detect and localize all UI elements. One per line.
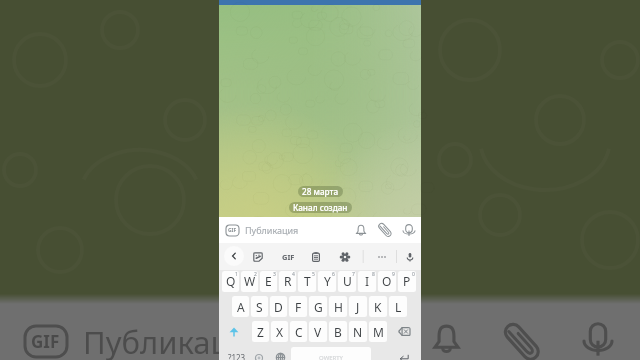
staticText: N bbox=[353, 324, 363, 340]
button[interactable]: QWERTY bbox=[291, 347, 371, 360]
button[interactable]: G bbox=[309, 296, 327, 317]
button[interactable]: Voice message bbox=[402, 217, 415, 243]
staticText: D bbox=[274, 299, 283, 315]
button[interactable]: T bbox=[298, 271, 316, 292]
button[interactable]: S bbox=[251, 296, 268, 317]
staticText: O bbox=[382, 273, 392, 289]
button[interactable]: E bbox=[260, 271, 277, 292]
button[interactable]: GIF bbox=[281, 243, 295, 270]
button[interactable]: N bbox=[349, 321, 367, 342]
staticText: QWERTY bbox=[319, 354, 344, 360]
button[interactable]: L bbox=[389, 296, 407, 317]
button[interactable]: P bbox=[398, 271, 416, 292]
staticText: I bbox=[365, 273, 370, 289]
button[interactable]: More bbox=[375, 243, 389, 270]
button[interactable]: GIF bbox=[226, 225, 239, 236]
staticText: 5 bbox=[312, 271, 315, 278]
staticText: P bbox=[403, 273, 411, 289]
staticText: 0 bbox=[412, 271, 415, 278]
button[interactable]: Voice typing bbox=[403, 243, 417, 270]
button[interactable]: B bbox=[329, 321, 347, 342]
staticText: Публикация bbox=[245, 224, 299, 236]
staticText: A bbox=[237, 299, 245, 315]
button[interactable]: Clipboard bbox=[309, 243, 323, 270]
staticText: Канал создан bbox=[293, 202, 348, 213]
staticText: GIF bbox=[282, 252, 295, 262]
staticText: GIF bbox=[228, 227, 237, 234]
staticText: W bbox=[244, 273, 256, 289]
staticText: R bbox=[284, 273, 292, 289]
button[interactable]: Backspace bbox=[390, 321, 417, 342]
button[interactable]: Close keyboard bbox=[224, 246, 244, 266]
button[interactable]: Notifications bbox=[431, 323, 462, 354]
button[interactable]: M bbox=[369, 321, 387, 342]
staticText: J bbox=[356, 299, 360, 315]
staticText: V bbox=[314, 324, 322, 340]
staticText: T bbox=[304, 273, 311, 289]
button[interactable]: K bbox=[369, 296, 387, 317]
button[interactable]: Notifications bbox=[354, 217, 367, 243]
button[interactable]: Emoji bbox=[252, 347, 266, 360]
button[interactable]: I bbox=[358, 271, 376, 292]
button[interactable]: H bbox=[329, 296, 347, 317]
button[interactable]: Settings bbox=[338, 243, 352, 270]
button[interactable]: X bbox=[271, 321, 288, 342]
button[interactable]: Voice message bbox=[584, 322, 612, 356]
button[interactable]: Y bbox=[318, 271, 336, 292]
staticText: 9 bbox=[392, 271, 395, 278]
button[interactable]: F bbox=[289, 296, 307, 317]
staticText: U bbox=[343, 273, 352, 289]
staticText: G bbox=[314, 299, 323, 315]
staticText: 7 bbox=[352, 271, 355, 278]
button[interactable]: ?123 bbox=[225, 347, 249, 360]
staticText: 3 bbox=[273, 271, 276, 278]
staticText: GIF bbox=[31, 330, 60, 353]
button[interactable]: Shift bbox=[221, 321, 246, 342]
staticText: L bbox=[395, 299, 402, 315]
staticText: S bbox=[256, 299, 263, 315]
button[interactable]: Attach bbox=[506, 326, 538, 358]
staticText: Z bbox=[257, 324, 264, 340]
staticText: 6 bbox=[332, 271, 335, 278]
staticText: M bbox=[373, 324, 384, 340]
staticText: Публикац bbox=[83, 321, 230, 360]
button[interactable]: Q bbox=[222, 271, 239, 292]
staticText: H bbox=[334, 299, 343, 315]
button[interactable]: Attach bbox=[378, 217, 391, 243]
staticText: X bbox=[276, 324, 284, 340]
staticText: F bbox=[295, 299, 302, 315]
button[interactable]: W bbox=[241, 271, 258, 292]
staticText: 8 bbox=[372, 271, 375, 278]
button[interactable]: Enter bbox=[390, 347, 417, 360]
button[interactable]: A bbox=[232, 296, 249, 317]
button[interactable]: J bbox=[349, 296, 367, 317]
button[interactable]: Stickers bbox=[251, 243, 265, 270]
button[interactable]: V bbox=[309, 321, 327, 342]
staticText: K bbox=[374, 299, 382, 315]
button[interactable]: U bbox=[338, 271, 356, 292]
staticText: 4 bbox=[292, 271, 295, 278]
staticText: Y bbox=[324, 273, 331, 289]
staticText: E bbox=[265, 273, 272, 289]
staticText: 28 марта bbox=[302, 186, 339, 197]
button[interactable]: D bbox=[270, 296, 287, 317]
staticText: B bbox=[334, 324, 342, 340]
button[interactable]: Change language bbox=[273, 347, 287, 360]
staticText: C bbox=[295, 324, 303, 340]
button[interactable]: Z bbox=[252, 321, 269, 342]
button[interactable]: R bbox=[279, 271, 296, 292]
button[interactable]: C bbox=[290, 321, 307, 342]
staticText: 2 bbox=[254, 271, 257, 278]
staticText: ?123 bbox=[228, 352, 246, 360]
staticText: Q bbox=[226, 273, 236, 289]
staticText: 1 bbox=[235, 271, 238, 278]
button[interactable]: O bbox=[378, 271, 396, 292]
